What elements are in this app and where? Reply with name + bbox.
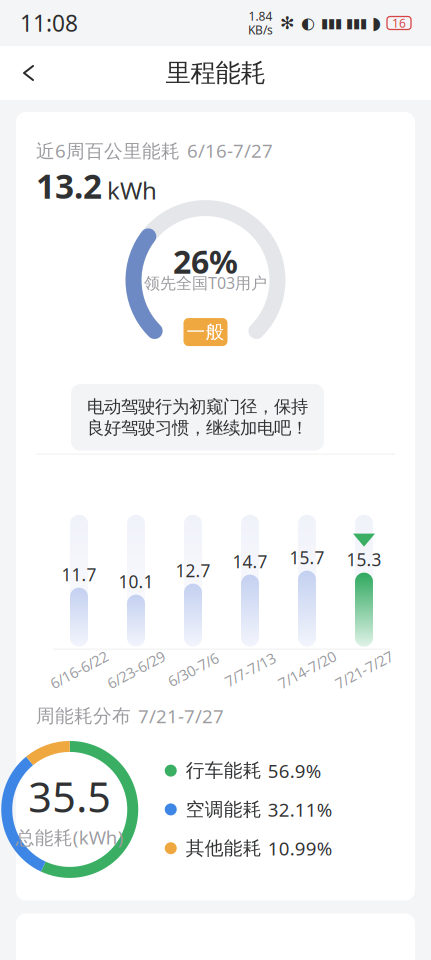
staticText: 近6周百公里能耗 [36, 138, 180, 163]
staticText: 13.2 [36, 164, 102, 208]
staticText: kWh [107, 174, 157, 206]
staticText: 7/14-7/20 [275, 660, 338, 679]
staticText: 15.3 [346, 548, 381, 571]
staticText: 10.99% [268, 836, 333, 861]
staticText: 7/21-7/27 [332, 660, 395, 679]
staticText: ◐ [301, 14, 315, 32]
button[interactable]: Back [8, 50, 52, 96]
staticText: 电动驾驶行为初窥门径，保持 良好驾驶习惯，继续加电吧！ [87, 396, 308, 439]
staticText: 12.7 [175, 559, 210, 582]
staticText: 35.5 [28, 769, 111, 824]
staticText: 行车能耗 [186, 759, 262, 782]
staticText: 空调能耗 [186, 798, 262, 821]
staticText: 6/30-7/6 [165, 660, 220, 679]
staticText: 一般 [186, 321, 224, 343]
staticText: 14.7 [232, 550, 267, 573]
staticText: 领先全国T03用户 [144, 272, 267, 293]
staticText: 7/21-7/27 [138, 704, 224, 728]
staticText: 56.9% [268, 758, 322, 783]
staticText: ▮▮▮ [321, 15, 342, 30]
staticText: 周能耗分布 [36, 705, 131, 727]
staticText: 26% [173, 240, 238, 283]
staticText: KB/s [248, 22, 273, 38]
staticText: 7/7-7/13 [222, 660, 277, 679]
staticText: 其他能耗 [186, 837, 262, 860]
staticText: 11:08 [20, 8, 78, 38]
staticText: 32.11% [268, 797, 333, 822]
staticText: ✻ [280, 13, 295, 33]
staticText: 11.7 [61, 563, 96, 586]
staticText: 6/16-6/22 [47, 660, 110, 679]
staticText: 总能耗(kWh) [16, 825, 124, 850]
staticText: 6/16-7/27 [187, 138, 273, 163]
staticText: ◗ [372, 13, 381, 33]
staticText: 1.84 [248, 8, 272, 24]
staticText: 6/23-6/29 [104, 660, 167, 679]
staticText: 里程能耗 [165, 57, 265, 88]
staticText: 10.1 [118, 570, 153, 593]
staticText: 16 [392, 15, 406, 31]
staticText: ▮▮▮ [346, 15, 367, 30]
staticText: 15.7 [289, 546, 324, 569]
